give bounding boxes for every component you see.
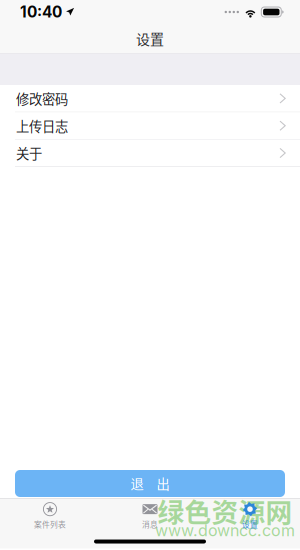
button[interactable]: 消息 xyxy=(100,499,200,532)
button[interactable]: 关于 xyxy=(0,140,300,167)
staticText: 消息 xyxy=(142,519,158,530)
button[interactable]: 设置 xyxy=(200,499,300,532)
staticText: 退 出 xyxy=(130,474,169,493)
staticText: 修改密码 xyxy=(16,89,68,108)
button[interactable]: 退 出 xyxy=(15,470,285,497)
staticText: 关于 xyxy=(16,143,42,163)
staticText: 设置 xyxy=(242,519,258,530)
staticText: 绿色资源网 xyxy=(157,491,292,530)
button[interactable]: 修改密码 xyxy=(0,85,300,112)
staticText: 案件列表 xyxy=(34,519,66,530)
button[interactable]: 案件列表 xyxy=(0,499,100,532)
staticText: 设置 xyxy=(136,28,164,49)
staticText: 10:40 xyxy=(20,3,62,21)
button[interactable]: 上传日志 xyxy=(0,112,300,140)
staticText: www.downcc.com xyxy=(155,521,295,540)
staticText: 上传日志 xyxy=(16,116,68,135)
